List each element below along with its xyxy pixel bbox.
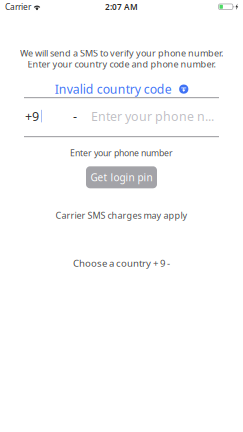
staticText: Enter your phone n... <box>91 108 214 125</box>
button[interactable]: Invalid country code <box>55 83 188 96</box>
button[interactable]: Choose a country + 9 - <box>73 258 170 267</box>
staticText: Enter your phone number <box>70 147 173 159</box>
staticText: Invalid country code <box>55 81 172 97</box>
staticText: Carrier <box>5 1 31 12</box>
staticText: 2:07 AM <box>105 1 138 12</box>
staticText: +9 <box>25 108 39 125</box>
staticText: Enter your country code and phone number… <box>27 58 215 70</box>
staticText: Choose a country + 9 - <box>73 256 170 270</box>
staticText: Carrier SMS charges may apply <box>55 209 187 221</box>
staticText: - <box>73 108 77 125</box>
staticText: Get login pin <box>90 170 152 184</box>
staticText: We will send a SMS to verify your phone … <box>20 47 223 59</box>
button[interactable]: Get login pin <box>86 166 157 188</box>
